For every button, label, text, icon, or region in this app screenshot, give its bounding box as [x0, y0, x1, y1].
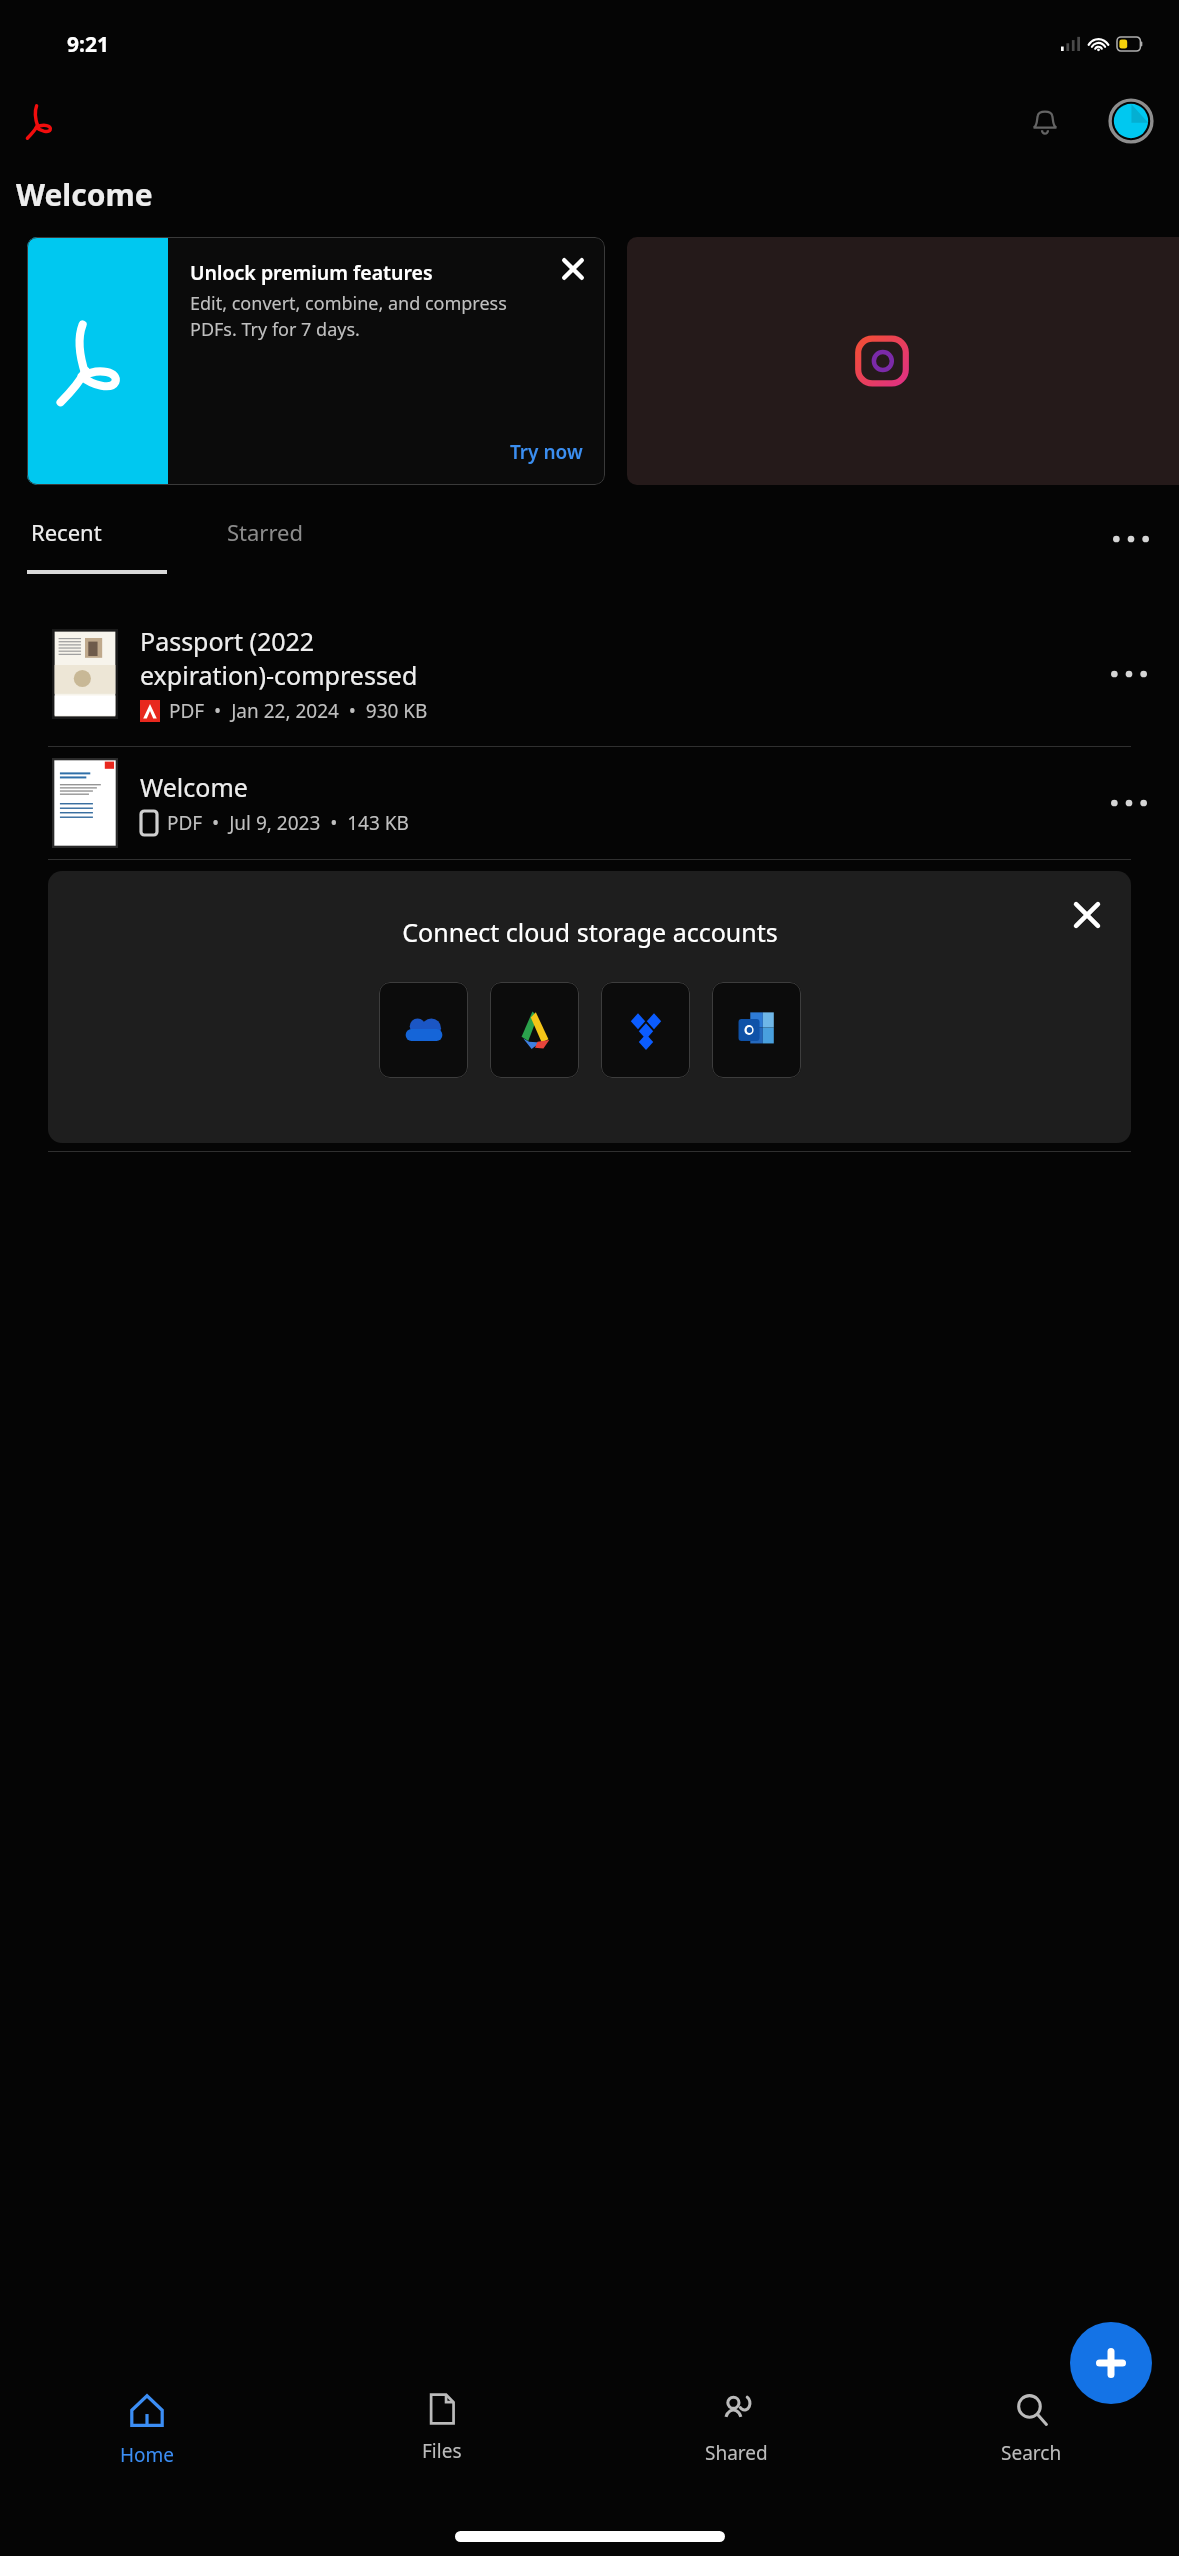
button[interactable]: Notifications	[1021, 97, 1069, 145]
button[interactable]: Try now	[506, 435, 587, 469]
staticText: 9:21	[67, 30, 109, 59]
button[interactable]: Google Drive	[490, 982, 579, 1078]
button[interactable]: Shared	[589, 2366, 884, 2516]
staticText: Home	[120, 2442, 175, 2468]
button[interactable]: Acrobat	[20, 98, 66, 144]
staticText: Edit, convert, combine, and compress PDF…	[190, 291, 541, 341]
button[interactable]: Dismiss	[1061, 889, 1113, 941]
staticText: PDF • Jul 9, 2023 • 143 KB	[167, 810, 409, 836]
staticText: expiration)-compressed	[140, 658, 418, 692]
staticText: Welcome	[140, 770, 248, 804]
staticText: Files	[422, 2438, 462, 2464]
button[interactable]: Outlook	[712, 982, 801, 1078]
button[interactable]: OneDrive	[379, 982, 468, 1078]
staticText: Connect cloud storage accounts	[402, 915, 778, 949]
button[interactable]: Welcome	[0, 747, 1179, 859]
button[interactable]: Home	[0, 2366, 294, 2516]
button[interactable]: More options	[1103, 511, 1159, 567]
button[interactable]: Dropbox	[601, 982, 690, 1078]
button[interactable]: Files	[294, 2366, 589, 2516]
button[interactable]: File options	[1093, 767, 1165, 839]
button[interactable]: Dismiss	[551, 247, 595, 291]
button[interactable]: Create	[1070, 2322, 1152, 2404]
staticText: Unlock premium features	[190, 259, 433, 286]
staticText: Passport (2022	[140, 624, 315, 658]
staticText: Try now	[510, 439, 583, 465]
button[interactable]: Unlock premium features	[27, 237, 605, 485]
staticText: Welcome	[16, 174, 153, 215]
staticText: Shared	[705, 2440, 768, 2466]
button[interactable]: Starred	[223, 513, 308, 551]
button[interactable]	[627, 237, 1179, 485]
button[interactable]: Recent	[27, 513, 106, 551]
staticText: Search	[1001, 2440, 1062, 2466]
button[interactable]: File options	[1093, 638, 1165, 710]
button[interactable]: Passport (2022	[0, 601, 1179, 746]
button[interactable]: Account	[1107, 97, 1155, 145]
staticText: PDF • Jan 22, 2024 • 930 KB	[169, 698, 428, 724]
button[interactable]: Search	[884, 2366, 1179, 2516]
staticText: Starred	[227, 517, 304, 547]
staticText: Recent	[31, 517, 102, 547]
